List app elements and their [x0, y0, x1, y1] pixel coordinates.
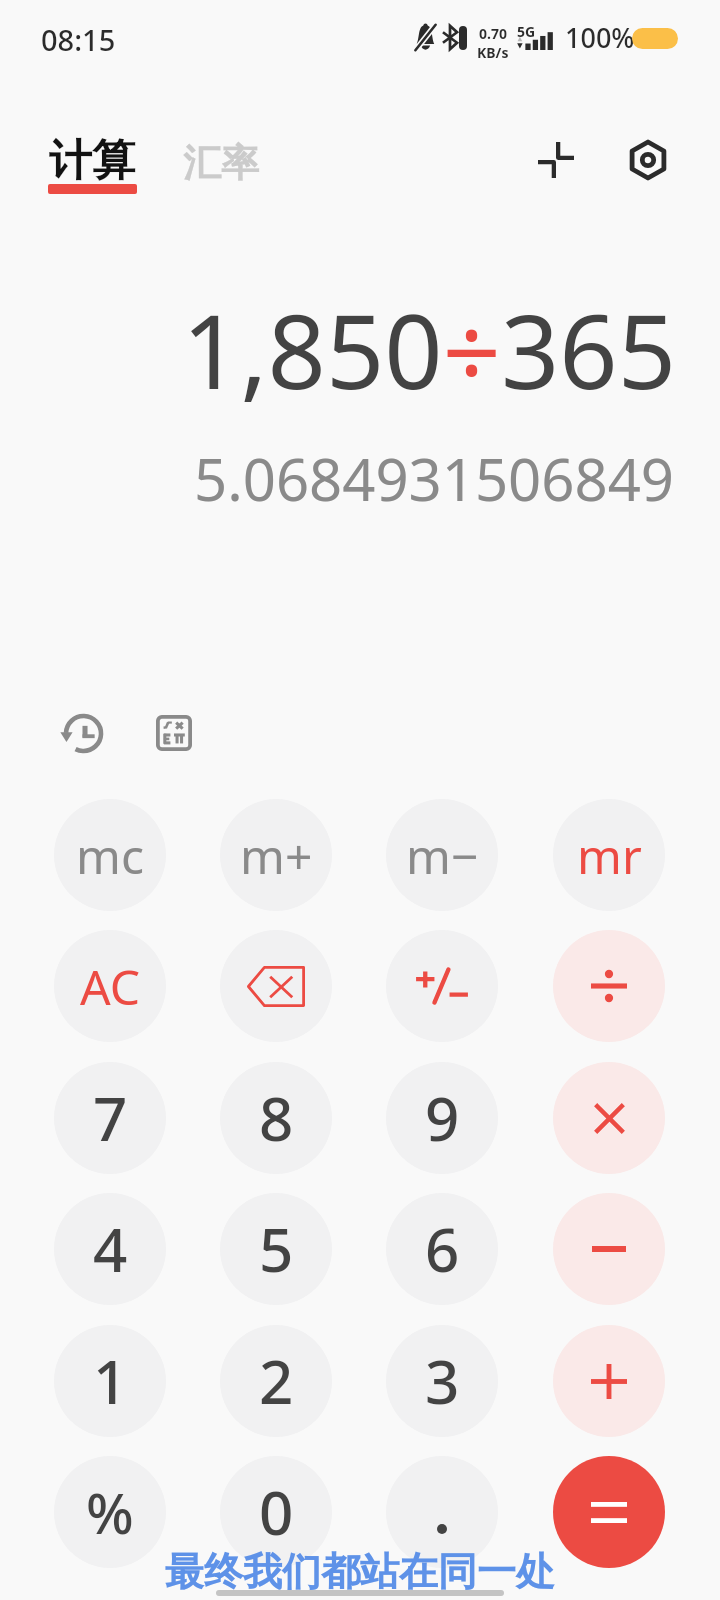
staticText: 计算 [49, 134, 135, 188]
button[interactable]: 0 [220, 1456, 332, 1568]
staticText: 6 [425, 1208, 460, 1290]
staticText: 100% [565, 19, 635, 56]
staticText: 3 [425, 1340, 460, 1422]
staticText: 5 [259, 1208, 294, 1290]
staticText: mc [76, 823, 144, 888]
button[interactable]: 1 [54, 1325, 166, 1437]
button[interactable]: Plus [553, 1325, 665, 1437]
button[interactable]: Minus [553, 1193, 665, 1305]
button[interactable]: Delete [220, 930, 332, 1042]
staticText: 0 [259, 1471, 294, 1553]
button[interactable]: m− [386, 799, 498, 911]
staticText: 0.70 [479, 24, 507, 43]
button[interactable]: % [54, 1456, 166, 1568]
button[interactable]: 6 [386, 1193, 498, 1305]
button[interactable]: Scientific keypad [142, 701, 206, 765]
button[interactable]: m+ [220, 799, 332, 911]
staticText: m− [406, 823, 479, 888]
staticText: m+ [240, 823, 313, 888]
staticText: 5G [517, 22, 536, 41]
staticText: 4 [93, 1208, 128, 1290]
button[interactable]: 3 [386, 1325, 498, 1437]
staticText: 7 [93, 1077, 128, 1159]
staticText: 8 [259, 1077, 294, 1159]
button[interactable]: mc [54, 799, 166, 911]
button[interactable]: AC [54, 930, 166, 1042]
staticText: KB/s [477, 43, 509, 62]
button[interactable]: 7 [54, 1062, 166, 1174]
staticText: 9 [425, 1077, 460, 1159]
button[interactable]: Settings [616, 128, 680, 192]
button[interactable]: 8 [220, 1062, 332, 1174]
button[interactable]: 2 [220, 1325, 332, 1437]
staticText: AC [80, 954, 141, 1019]
staticText: 汇率 [183, 139, 259, 187]
button[interactable]: mr [553, 799, 665, 911]
button[interactable]: History [49, 701, 113, 765]
staticText: % [86, 1474, 134, 1550]
button[interactable]: 汇率 [175, 127, 265, 189]
staticText: 1,850÷365 [0, 280, 676, 419]
button[interactable]: Equals [553, 1456, 665, 1568]
staticText: mr [577, 823, 642, 888]
button[interactable]: Plus minus [386, 930, 498, 1042]
button[interactable]: 4 [54, 1193, 166, 1305]
button[interactable]: Multiply [553, 1062, 665, 1174]
button[interactable]: Decimal point [386, 1456, 498, 1568]
staticText: 2 [259, 1340, 294, 1422]
staticText: 5.0684931506849 [0, 439, 674, 518]
staticText: 最终我们都站在同一处 [165, 1547, 555, 1596]
staticText: 08:15 [41, 20, 116, 59]
staticText: 1 [93, 1340, 128, 1422]
button[interactable]: 5 [220, 1193, 332, 1305]
button[interactable]: 9 [386, 1062, 498, 1174]
button[interactable]: 计算 [37, 126, 140, 206]
button[interactable]: Divide [553, 930, 665, 1042]
button[interactable]: Expand keypad [524, 128, 588, 192]
